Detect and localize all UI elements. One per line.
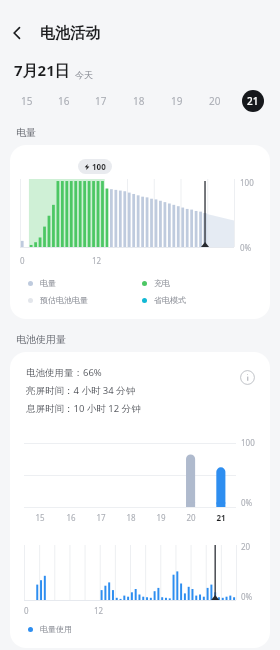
staticText: 电量使用: [40, 624, 72, 634]
staticText: 100: [241, 437, 255, 448]
staticText: 电池使用量: [16, 333, 66, 346]
staticText: 电池活动: [40, 24, 100, 43]
staticText: 100: [240, 177, 254, 188]
staticText: 0%: [241, 497, 253, 508]
staticText: 20: [186, 512, 196, 523]
staticText: 100: [92, 161, 106, 172]
staticText: 21: [216, 512, 226, 523]
staticText: 今天: [75, 69, 93, 80]
staticText: 电池使用量：66%: [26, 366, 102, 379]
staticText: 16: [66, 512, 76, 523]
staticText: 0: [20, 255, 25, 266]
button[interactable]: 21: [234, 88, 272, 114]
staticText: 电量: [16, 126, 36, 139]
staticText: 充电: [154, 278, 170, 288]
button[interactable]: 15: [8, 88, 45, 114]
staticText: 息屏时间：10 小时 12 分钟: [26, 402, 141, 415]
staticText: 17: [95, 94, 107, 108]
staticText: 20: [241, 541, 251, 552]
staticText: 17: [96, 512, 106, 523]
staticText: 12: [94, 605, 104, 616]
staticText: 19: [156, 512, 166, 523]
button[interactable]: Back: [0, 16, 34, 50]
staticText: 0%: [241, 591, 253, 602]
staticText: 15: [35, 512, 45, 523]
button[interactable]: 16: [45, 88, 82, 114]
staticText: 18: [133, 94, 145, 108]
staticText: 12: [92, 255, 102, 266]
staticText: 0%: [240, 242, 252, 253]
staticText: 18: [126, 512, 136, 523]
staticText: 20: [209, 94, 221, 108]
staticText: 16: [58, 94, 70, 108]
staticText: 19: [171, 94, 183, 108]
staticText: 7月21日: [14, 60, 70, 80]
button[interactable]: 18: [120, 88, 158, 114]
staticText: 预估电池电量: [40, 295, 88, 305]
staticText: 0: [24, 605, 29, 616]
staticText: 15: [21, 94, 33, 108]
button[interactable]: 17: [82, 88, 120, 114]
button[interactable]: 20: [196, 88, 234, 114]
button[interactable]: 19: [158, 88, 196, 114]
button[interactable]: Info: [236, 366, 258, 388]
staticText: 21: [247, 94, 259, 108]
staticText: 省电模式: [154, 295, 186, 305]
staticText: 电量: [40, 278, 56, 288]
staticText: 亮屏时间：4 小时 34 分钟: [26, 384, 136, 397]
